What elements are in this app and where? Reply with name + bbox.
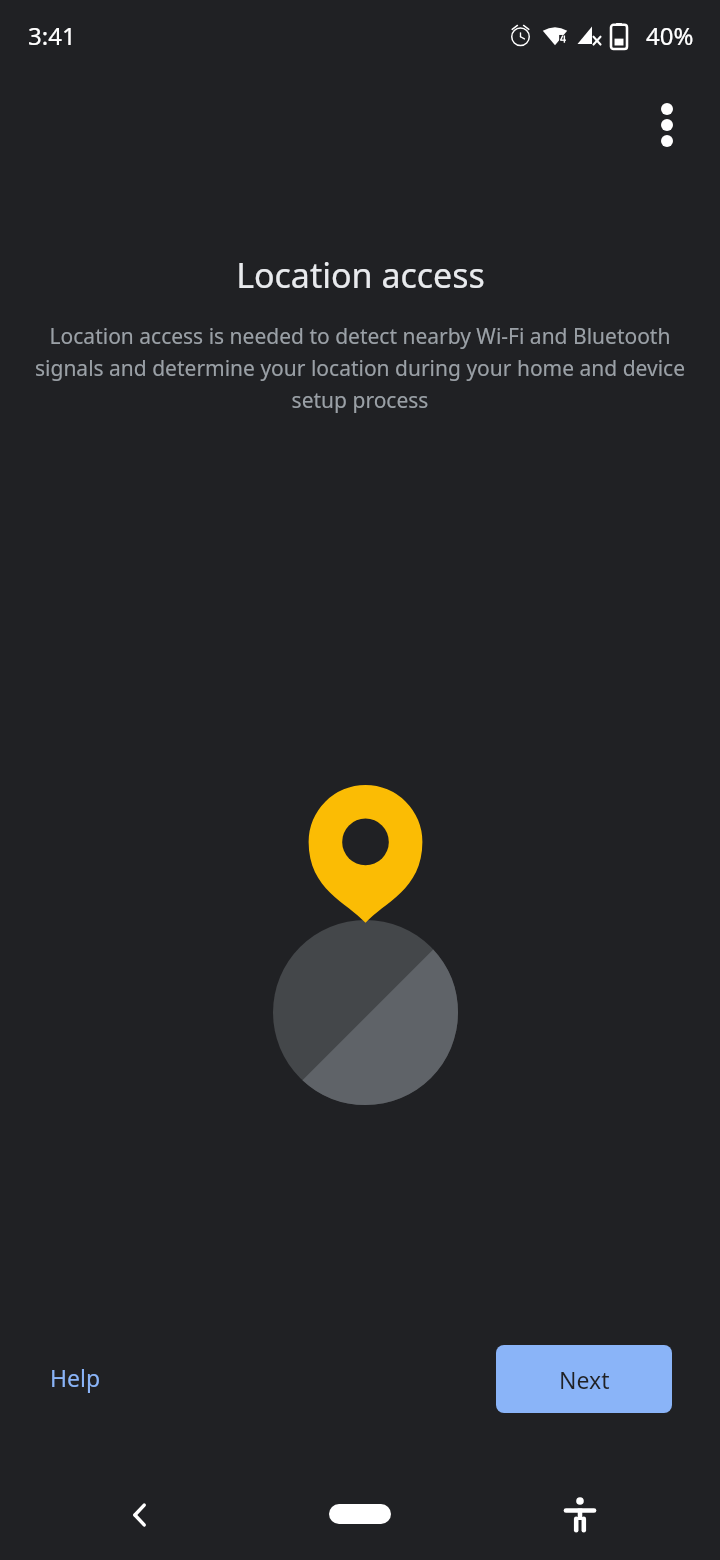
button[interactable]: Help xyxy=(50,1362,101,1393)
staticText: 3:41 xyxy=(28,19,76,52)
button[interactable]: Accessibility xyxy=(550,1485,610,1545)
staticText: Next xyxy=(559,1364,610,1395)
button[interactable]: Home xyxy=(310,1497,410,1531)
button[interactable]: More options xyxy=(628,86,706,164)
button[interactable]: Next xyxy=(496,1345,672,1413)
button[interactable]: Back xyxy=(110,1485,170,1545)
staticText: Location access is needed to detect near… xyxy=(26,322,694,414)
staticText: 40% xyxy=(646,19,694,52)
staticText: Help xyxy=(50,1362,101,1393)
staticText: Location access xyxy=(236,252,485,298)
